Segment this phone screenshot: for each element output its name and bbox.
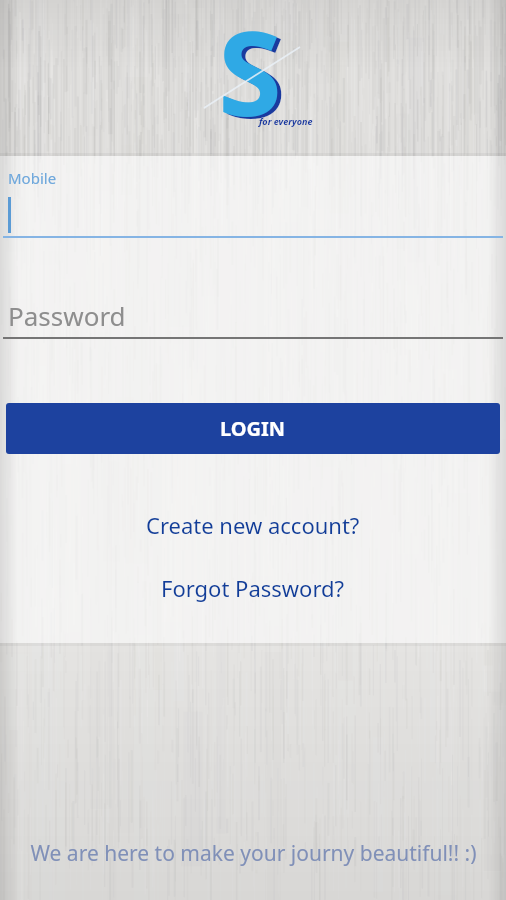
staticText: Forgot Password? [161,573,345,603]
staticText: Create new account? [146,510,360,540]
button[interactable]: Forgot Password? [0,571,506,605]
staticText: We are here to make your journy beautifu… [30,839,477,867]
button[interactable]: Mobile [0,165,506,240]
staticText: S [222,0,286,129]
staticText: for everyone [259,115,313,127]
button[interactable]: Password [0,295,506,340]
staticText: LOGIN [220,415,286,442]
button[interactable]: Create new account? [0,508,506,542]
button[interactable]: LOGIN [6,403,500,454]
staticText: Password [8,298,126,333]
staticText: S [218,0,282,127]
staticText: Mobile [8,168,57,188]
